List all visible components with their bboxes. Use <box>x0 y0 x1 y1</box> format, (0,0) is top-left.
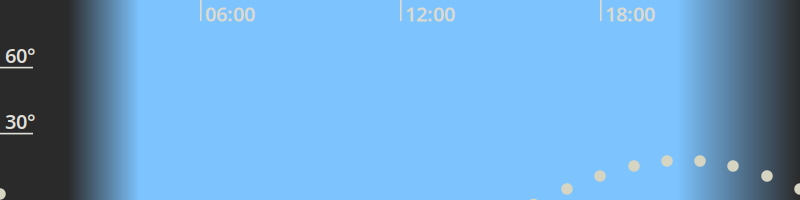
staticText: 12:00 <box>405 0 455 27</box>
staticText: 60° <box>5 42 36 69</box>
staticText: 30° <box>5 108 36 135</box>
staticText: 18:00 <box>605 0 655 27</box>
staticText: 06:00 <box>205 0 255 27</box>
